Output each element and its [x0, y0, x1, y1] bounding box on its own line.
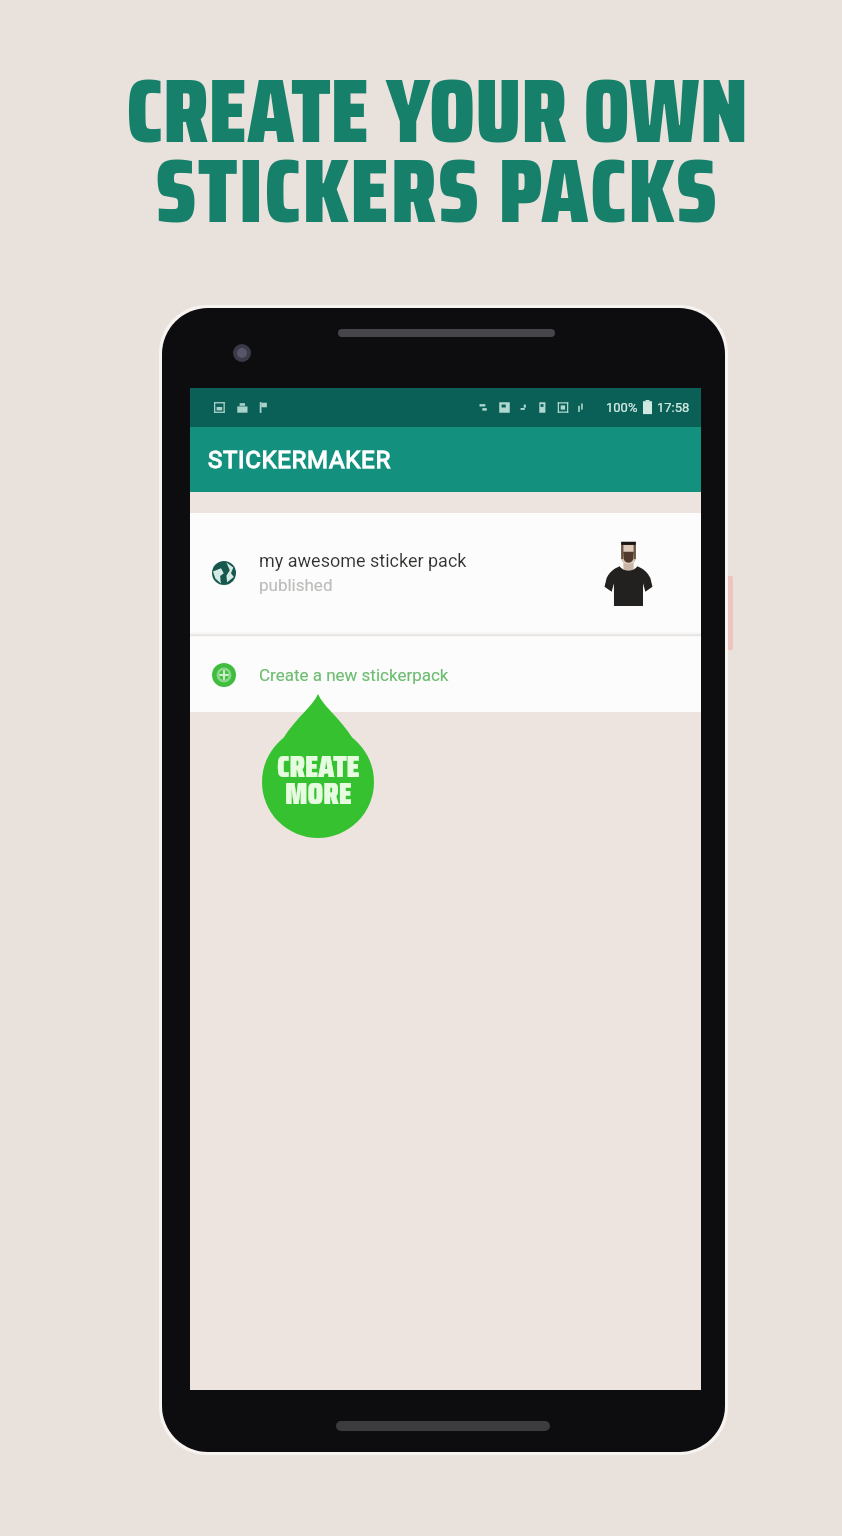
staticText: STICKERMAKER [208, 446, 391, 474]
staticText: Create a new stickerpack [259, 665, 449, 685]
staticText: 17:58 [657, 400, 690, 415]
button[interactable]: Create more [262, 694, 374, 838]
staticText: my awesome sticker pack [259, 550, 467, 571]
button[interactable]: Create a new stickerpack [190, 637, 701, 712]
staticText: MORE [285, 769, 352, 818]
staticText: CREATE YOUR OWN [126, 39, 748, 182]
staticText: 100% [606, 400, 638, 415]
button[interactable]: my awesome sticker pack [190, 513, 701, 632]
staticText: STICKERS PACKS [155, 119, 719, 262]
staticText: CREATE [277, 742, 360, 791]
staticText: published [259, 575, 333, 595]
